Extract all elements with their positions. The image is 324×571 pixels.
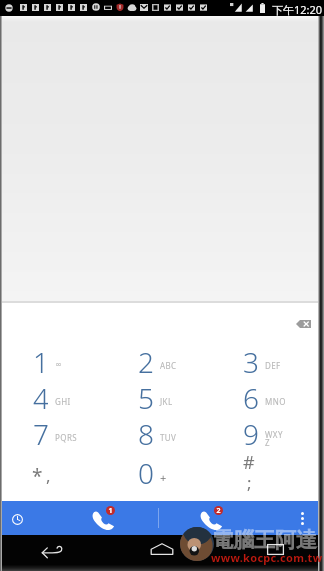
staticText: TUV [160,432,177,443]
staticText: 1 [33,343,48,379]
staticText: 下午12:20 [272,2,323,17]
staticText: ABC [160,360,177,371]
button[interactable]: 6 [213,380,318,416]
staticText: MNO [265,396,286,407]
staticText: 8 [138,415,153,451]
staticText: 0 [138,454,154,490]
staticText: 7 [33,415,48,451]
staticText: 2 [216,506,221,515]
button[interactable]: Call with SIM 2 [184,501,240,535]
staticText: www.kocpc.com.tw [211,550,323,565]
button[interactable]: Zero plus [108,452,213,488]
button[interactable]: 1 [2,344,108,380]
staticText: 1 [108,506,113,515]
staticText: 2 [138,343,153,379]
staticText: # [243,450,255,475]
staticText: ; [247,471,252,494]
button[interactable]: 2 [108,344,213,380]
staticText: PQRS [55,432,78,443]
button[interactable]: 9 [213,416,318,452]
staticText: 電腦王阿達 [212,527,317,553]
staticText: ∞ [55,360,63,369]
button[interactable]: Pound [213,452,318,488]
button[interactable]: 4 [2,380,108,416]
button[interactable]: Recent apps [254,538,296,560]
staticText: 6 [243,379,258,415]
staticText: , [46,464,51,487]
staticText: GHI [55,396,71,407]
button[interactable]: Back [30,540,72,562]
button[interactable]: Home [141,538,183,560]
button[interactable]: 5 [108,380,213,416]
staticText: 9 [243,415,258,451]
staticText: WXY Z [265,429,283,448]
button[interactable]: Backspace [287,312,319,336]
button[interactable]: More options [290,501,314,535]
staticText: 4 [33,379,48,415]
button[interactable]: 3 [213,344,318,380]
staticText: * [32,463,43,489]
button[interactable]: 8 [108,416,213,452]
staticText: 3 [243,343,258,379]
button[interactable]: Call with SIM 1 [76,501,132,535]
staticText: + [160,470,167,485]
button[interactable]: Call history [0,501,34,535]
button[interactable]: 7 [2,416,108,452]
staticText: DEF [265,360,281,371]
staticText: JKL [160,396,173,407]
button[interactable]: Star [2,452,108,488]
staticText: 5 [138,379,153,415]
